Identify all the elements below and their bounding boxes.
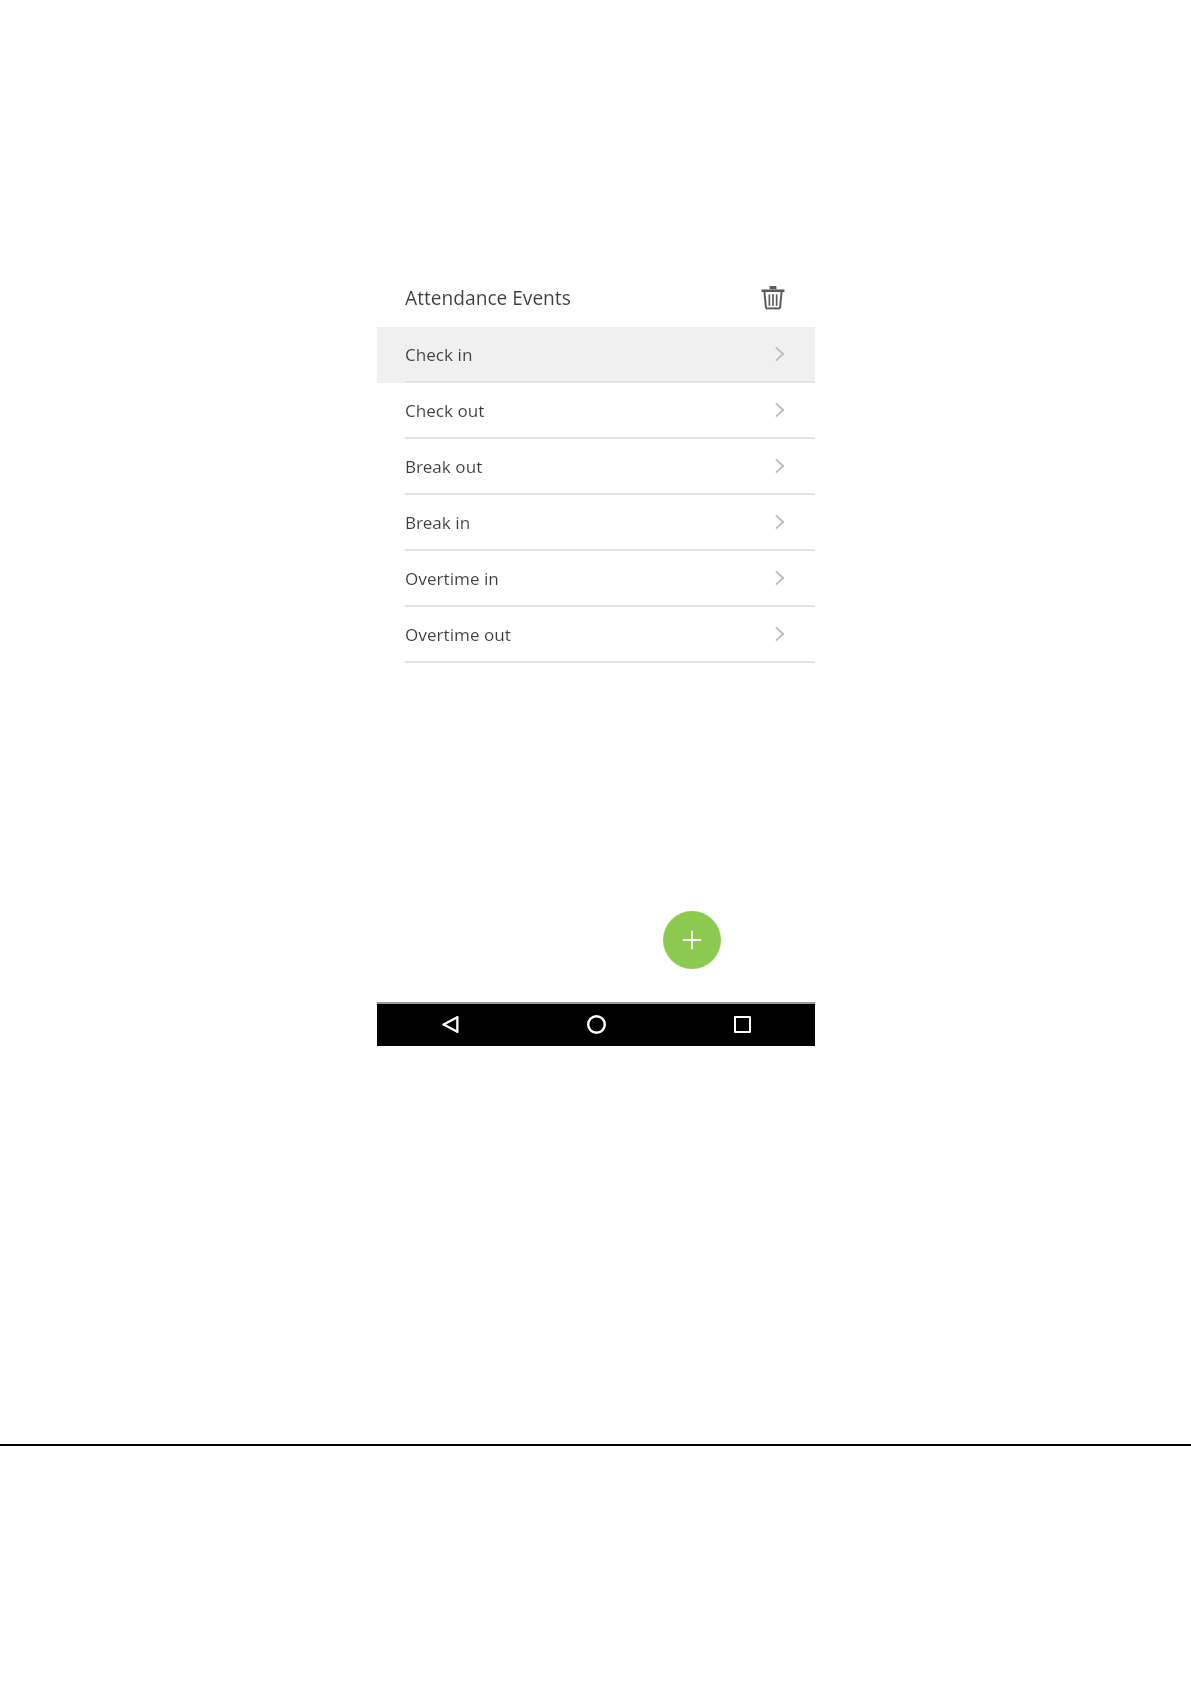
- button[interactable]: Overtime in: [377, 551, 815, 607]
- staticText: Check out: [405, 399, 485, 422]
- button[interactable]: Back: [377, 1002, 523, 1046]
- staticText: Break in: [405, 511, 471, 534]
- button[interactable]: Home: [523, 1002, 669, 1046]
- staticText: Break out: [405, 455, 483, 478]
- staticText: Overtime in: [405, 567, 499, 590]
- button[interactable]: Check out: [377, 383, 815, 439]
- button[interactable]: Check in: [377, 327, 815, 383]
- staticText: Attendance Events: [405, 285, 571, 311]
- staticText: Check in: [405, 343, 473, 366]
- button[interactable]: Delete: [751, 276, 795, 320]
- button[interactable]: Overtime out: [377, 607, 815, 663]
- button[interactable]: Break in: [377, 495, 815, 551]
- button[interactable]: Recent apps: [669, 1002, 815, 1046]
- button[interactable]: Break out: [377, 439, 815, 495]
- staticText: Overtime out: [405, 623, 511, 646]
- button[interactable]: Add event: [663, 911, 721, 969]
